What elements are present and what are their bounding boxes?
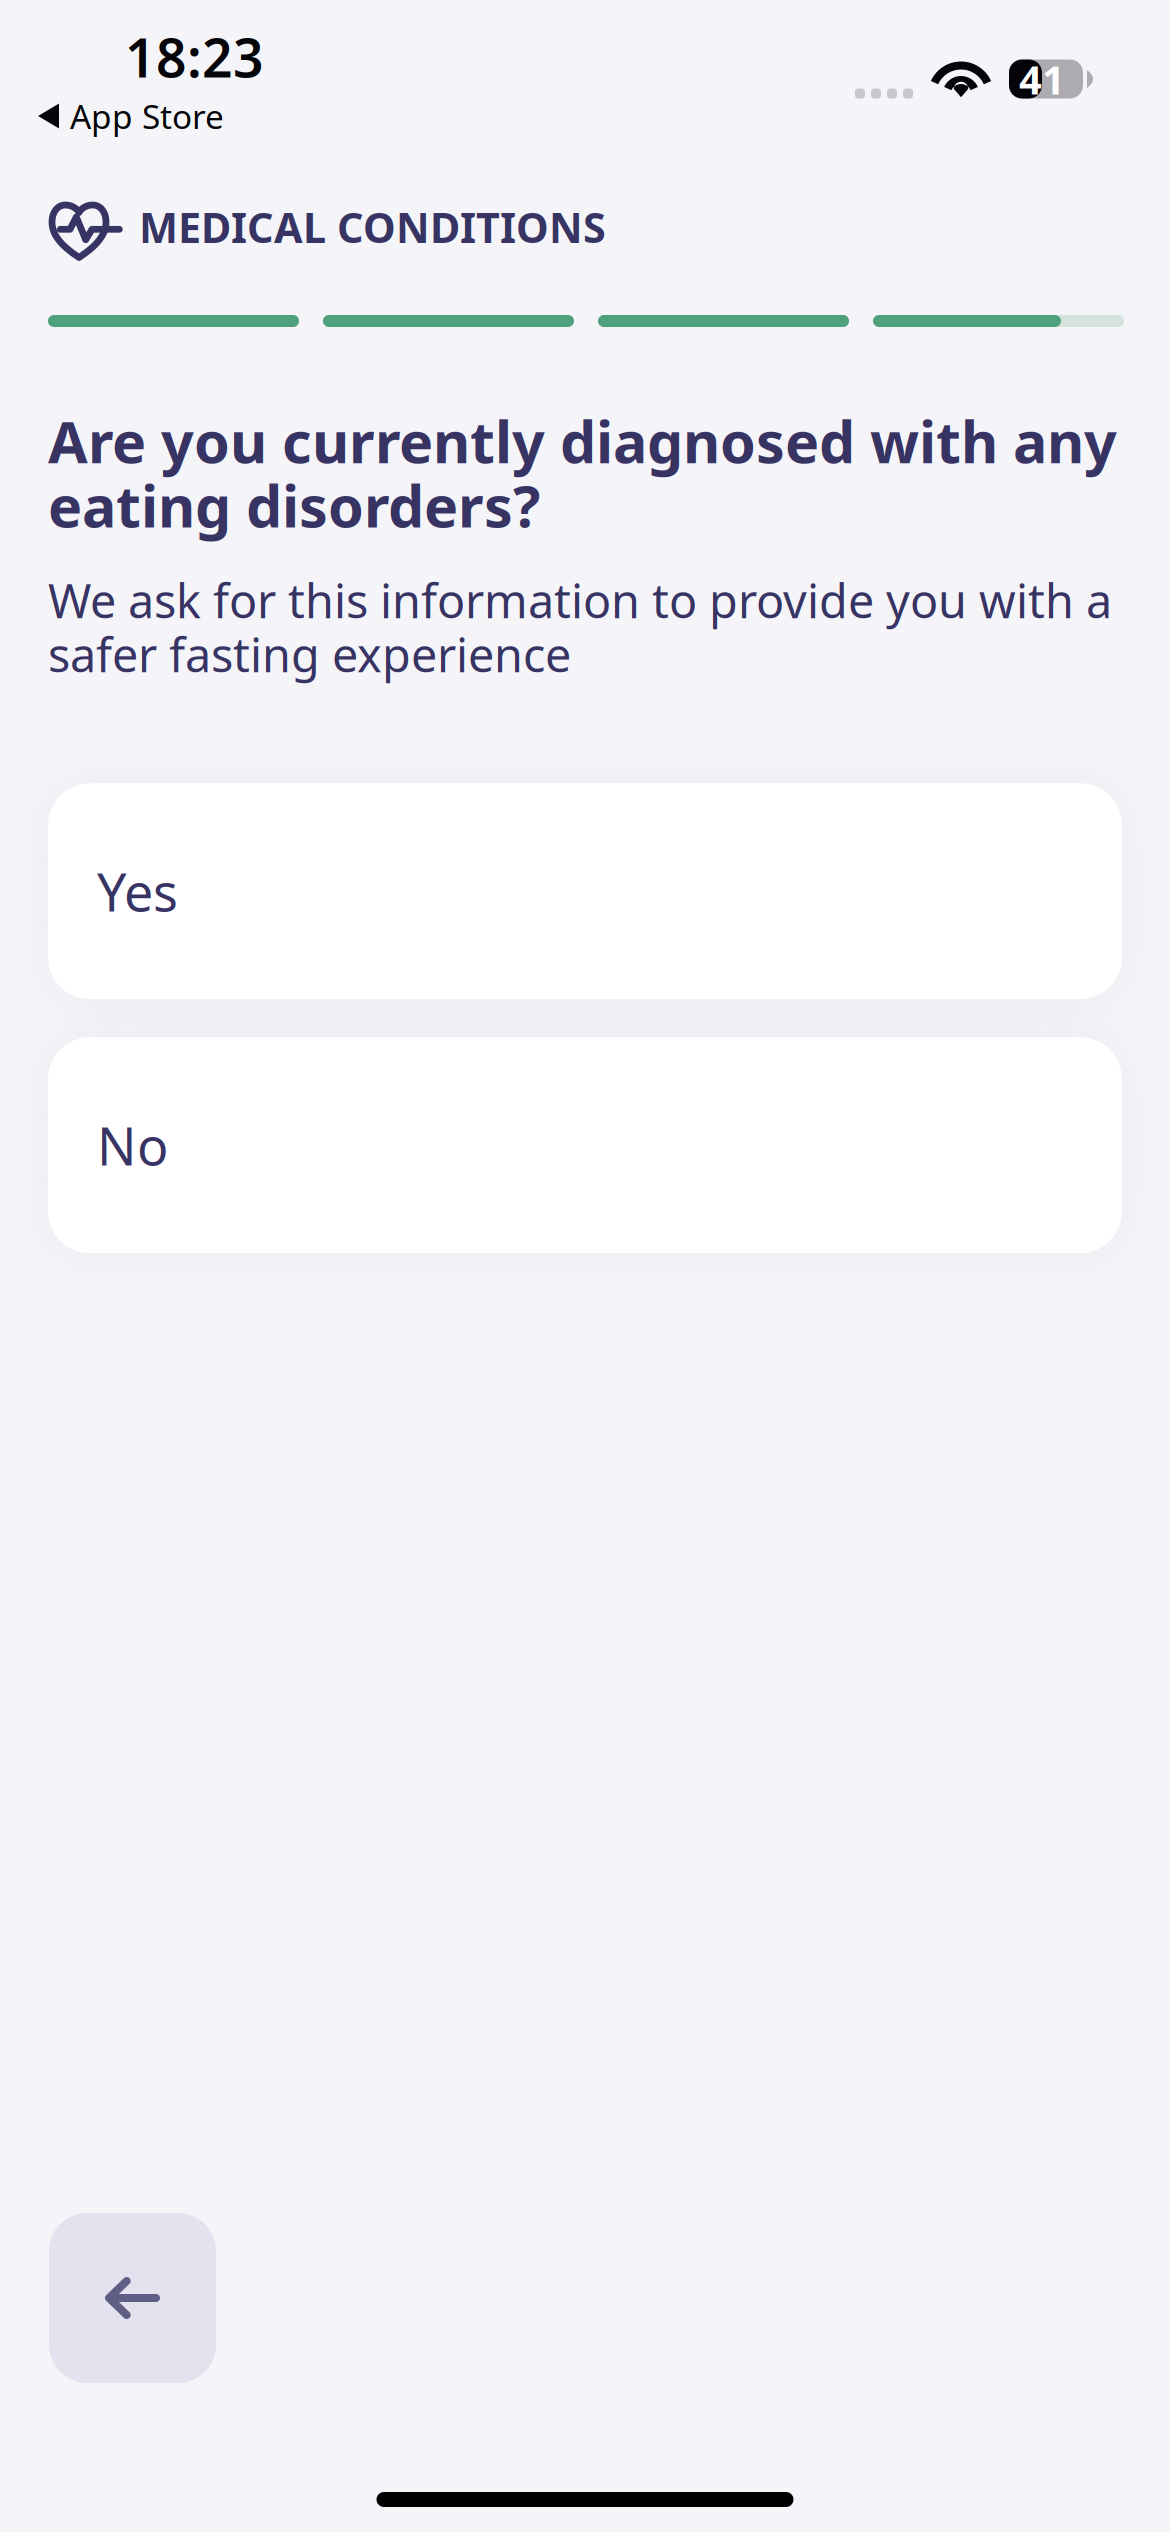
button[interactable]: Back — [49, 2213, 216, 2383]
staticText: Yes — [97, 857, 178, 926]
staticText: 41 — [1019, 52, 1065, 105]
button[interactable]: Yes — [48, 783, 1122, 999]
staticText: No — [97, 1111, 168, 1180]
staticText: 18:23 — [125, 21, 264, 92]
staticText: App Store — [70, 94, 224, 138]
staticText: We ask for this information to provide y… — [48, 569, 1112, 685]
staticText: MEDICAL CONDITIONS — [139, 200, 606, 254]
button[interactable]: App Store — [38, 99, 224, 133]
staticText: Are you currently diagnosed with any eat… — [48, 403, 1117, 543]
button[interactable]: No — [48, 1037, 1122, 1253]
